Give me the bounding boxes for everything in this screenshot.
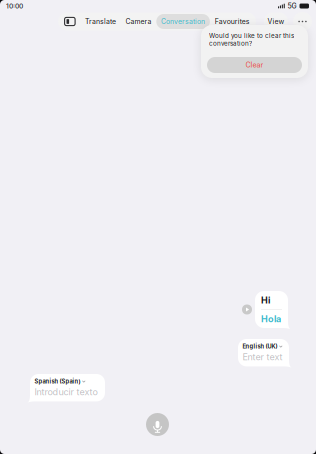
staticText: Translate <box>85 17 116 26</box>
staticText: Introducir texto <box>34 386 97 397</box>
button[interactable]: View <box>264 12 288 30</box>
button[interactable]: Conversation <box>156 14 210 29</box>
button[interactable]: Clear <box>207 57 302 73</box>
staticText: Would you like to clear this conversatio… <box>209 32 294 47</box>
staticText: 5G <box>287 2 296 10</box>
button[interactable]: Translate <box>80 14 121 29</box>
staticText: Camera <box>125 17 151 26</box>
staticText: 10:00 <box>6 2 23 10</box>
staticText: Enter text <box>242 351 282 362</box>
staticText: Favourites <box>215 17 250 26</box>
staticText: View <box>267 17 284 26</box>
button[interactable]: Start recording <box>146 413 169 436</box>
staticText: English (UK) <box>242 343 277 350</box>
button[interactable]: Show sidebar <box>60 12 80 30</box>
staticText: Hi <box>261 295 270 306</box>
button[interactable]: Camera <box>121 14 156 29</box>
button[interactable]: Spanish (Spain) <box>30 374 105 401</box>
staticText: Spanish (Spain) <box>34 378 80 385</box>
staticText: Hola <box>261 313 281 324</box>
button[interactable]: English (UK) <box>238 339 289 366</box>
button[interactable]: More options <box>293 12 312 31</box>
button[interactable]: Favourites <box>210 14 254 29</box>
button[interactable]: Play translation <box>242 304 252 314</box>
staticText: Conversation <box>161 17 205 26</box>
staticText: Clear <box>245 61 263 69</box>
